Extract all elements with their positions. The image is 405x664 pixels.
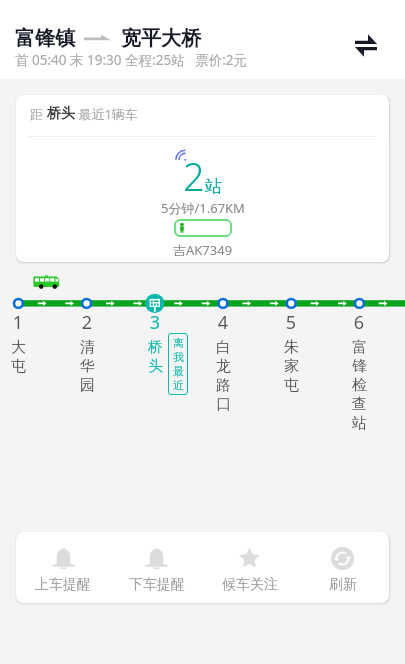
button[interactable]: 下车提醒 — [110, 532, 203, 603]
button[interactable]: 6 — [337, 310, 381, 405]
staticText: 朱 — [284, 338, 299, 357]
staticText: 园 — [80, 376, 95, 395]
button[interactable]: 1 — [0, 310, 40, 348]
staticText: 华 — [80, 357, 95, 376]
button[interactable]: 刷新 — [296, 532, 389, 603]
staticText: 6 — [337, 310, 381, 335]
staticText: 站 — [352, 414, 367, 433]
staticText: 口 — [216, 395, 231, 414]
button[interactable]: 4 — [201, 310, 245, 386]
staticText: 4 — [201, 310, 245, 335]
staticText: 富 — [352, 338, 367, 357]
staticText: 龙 — [216, 357, 231, 376]
staticText: 5分钟/1.67KM — [161, 199, 245, 217]
staticText: 大 — [11, 338, 26, 357]
staticText: 白 — [216, 338, 231, 357]
staticText: 锋 — [352, 357, 367, 376]
staticText: 家 — [284, 357, 299, 376]
button[interactable]: 离 — [168, 336, 188, 392]
staticText: 屯 — [11, 357, 26, 376]
staticText: 下车提醒 — [129, 576, 185, 594]
staticText: 2 — [183, 150, 205, 202]
button[interactable]: 5 — [269, 310, 313, 367]
button[interactable]: 距 — [16, 95, 389, 262]
button[interactable]: 2 — [65, 310, 109, 367]
staticText: 刷新 — [329, 576, 357, 594]
staticText: 查 — [352, 395, 367, 414]
staticText: 吉AK7349 — [173, 241, 233, 259]
staticText: 路 — [216, 376, 231, 395]
staticText: 5 — [269, 310, 313, 335]
staticText: 候车关注 — [222, 576, 278, 594]
staticText: 屯 — [284, 376, 299, 395]
staticText: 最 — [173, 364, 184, 378]
staticText: 清 — [80, 338, 95, 357]
staticText: 富锋镇 — [15, 26, 75, 51]
staticText: 头 — [148, 357, 163, 376]
staticText: 最近1辆车 — [75, 105, 138, 123]
staticText: 距 — [30, 105, 47, 123]
staticText: 站 — [205, 176, 222, 197]
button[interactable]: 候车关注 — [203, 532, 296, 603]
staticText: 首 05:40 末 19:30 全程:25站 票价:2元 — [15, 51, 247, 69]
staticText: 宽平大桥 — [121, 26, 201, 51]
staticText: 近 — [173, 378, 184, 392]
staticText: 我 — [173, 350, 184, 364]
staticText: 1 — [0, 310, 40, 335]
staticText: 3 — [133, 310, 177, 335]
staticText: 上车提醒 — [35, 576, 91, 594]
button[interactable]: 上车提醒 — [16, 532, 110, 603]
staticText: 离 — [173, 336, 184, 350]
staticText: 桥头 — [47, 105, 75, 123]
staticText: 检 — [352, 376, 367, 395]
staticText: 2 — [65, 310, 109, 335]
button[interactable]: 3 — [133, 310, 177, 348]
staticText: 桥 — [148, 338, 163, 357]
button[interactable]: Swap direction — [350, 30, 382, 62]
